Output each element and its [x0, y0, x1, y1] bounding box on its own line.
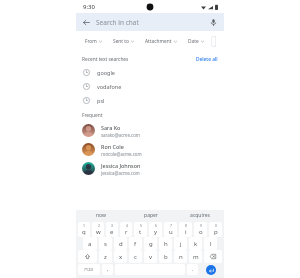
- button[interactable]: vodafone: [76, 79, 224, 93]
- staticText: google: [97, 69, 115, 76]
- staticText: j: [180, 240, 182, 248]
- staticText: Ron Cole: [101, 143, 124, 150]
- button[interactable]: Date: [184, 36, 208, 47]
- staticText: paper: [144, 212, 158, 219]
- button[interactable]: Back: [81, 17, 92, 28]
- staticText: p: [214, 228, 218, 236]
- button[interactable]: 0: [209, 222, 222, 237]
- staticText: jessica@acme.com: [101, 170, 140, 176]
- button[interactable]: .: [187, 264, 198, 275]
- staticText: Date: [188, 38, 199, 45]
- staticText: g: [149, 240, 153, 248]
- staticText: ?123: [84, 267, 94, 273]
- button[interactable]: 9: [194, 222, 207, 237]
- staticText: 4: [126, 223, 128, 228]
- staticText: sarako@acme.com: [101, 132, 140, 138]
- button[interactable]: From: [81, 36, 106, 47]
- button[interactable]: 4: [120, 222, 132, 237]
- staticText: v: [149, 253, 153, 261]
- staticText: 6: [155, 223, 157, 228]
- staticText: a: [88, 240, 92, 248]
- button[interactable]: d: [114, 237, 127, 250]
- button[interactable]: [211, 36, 216, 47]
- staticText: vodafone: [97, 83, 122, 90]
- button[interactable]: g: [144, 237, 157, 250]
- staticText: ,: [107, 266, 109, 273]
- staticText: Attachment: [145, 38, 172, 45]
- button[interactable]: s: [99, 237, 112, 250]
- button[interactable]: Voice search: [208, 17, 219, 28]
- staticText: b: [164, 253, 168, 261]
- button[interactable]: Delete all: [196, 56, 218, 63]
- button[interactable]: Sent to: [109, 36, 138, 47]
- staticText: 7: [170, 223, 172, 228]
- staticText: 9: [200, 223, 202, 228]
- staticText: t: [139, 228, 142, 236]
- staticText: z: [104, 253, 107, 261]
- staticText: Sent to: [113, 38, 129, 45]
- button[interactable]: ?123: [78, 264, 100, 275]
- staticText: y: [154, 228, 158, 236]
- staticText: w: [96, 228, 101, 236]
- staticText: From: [85, 38, 97, 45]
- button[interactable]: 6: [149, 222, 162, 237]
- staticText: 2: [98, 223, 100, 228]
- staticText: Frequent: [82, 112, 103, 119]
- button[interactable]: 2: [92, 222, 104, 237]
- staticText: h: [164, 240, 168, 248]
- button[interactable]: 5: [134, 222, 147, 237]
- button[interactable]: Back: [76, 13, 224, 31]
- button[interactable]: 1: [78, 222, 90, 237]
- button[interactable]: n: [174, 250, 187, 263]
- button[interactable]: k: [189, 237, 202, 250]
- button[interactable]: Search: [200, 264, 222, 275]
- staticText: q: [82, 228, 86, 236]
- staticText: .: [192, 266, 194, 273]
- button[interactable]: v: [144, 250, 157, 263]
- staticText: 0: [215, 223, 217, 228]
- button[interactable]: Ron Cole: [76, 140, 224, 159]
- button[interactable]: x: [114, 250, 127, 263]
- staticText: Delete all: [196, 56, 218, 63]
- staticText: i: [185, 228, 187, 236]
- staticText: d: [119, 240, 123, 248]
- staticText: s: [104, 240, 107, 248]
- button[interactable]: Backspace: [204, 250, 222, 263]
- button[interactable]: acquires: [175, 210, 224, 221]
- button[interactable]: psl: [76, 93, 224, 107]
- button[interactable]: c: [129, 250, 142, 263]
- button[interactable]: a: [83, 237, 97, 250]
- button[interactable]: paper: [126, 210, 175, 221]
- button[interactable]: Sara Ko: [76, 121, 224, 140]
- button[interactable]: Shift: [78, 250, 97, 263]
- button[interactable]: l: [204, 237, 217, 250]
- button[interactable]: f: [129, 237, 142, 250]
- button[interactable]: Attachment: [141, 36, 181, 47]
- button[interactable]: j: [174, 237, 187, 250]
- staticText: f: [134, 240, 137, 248]
- staticText: acquires: [190, 212, 210, 219]
- staticText: m: [193, 253, 199, 261]
- button[interactable]: 7: [164, 222, 177, 237]
- button[interactable]: z: [99, 250, 112, 263]
- staticText: r: [125, 228, 128, 236]
- staticText: Recent text searches: [82, 56, 129, 63]
- button[interactable]: m: [189, 250, 202, 263]
- staticText: e: [110, 228, 114, 236]
- staticText: Sara Ko: [101, 124, 121, 131]
- staticText: Search in chat: [96, 18, 139, 27]
- staticText: 9:30: [83, 3, 95, 11]
- button[interactable]: b: [159, 250, 172, 263]
- staticText: k: [194, 240, 198, 248]
- staticText: now: [96, 212, 106, 219]
- button[interactable]: 3: [106, 222, 118, 237]
- button[interactable]: h: [159, 237, 172, 250]
- staticText: n: [179, 253, 183, 261]
- button[interactable]: ,: [102, 264, 113, 275]
- button[interactable]: 8: [179, 222, 192, 237]
- button[interactable]: Jessica Johnson: [76, 159, 224, 178]
- staticText: roncole@acme.com: [101, 151, 142, 157]
- button[interactable]: now: [76, 210, 126, 221]
- button[interactable]: google: [76, 65, 224, 79]
